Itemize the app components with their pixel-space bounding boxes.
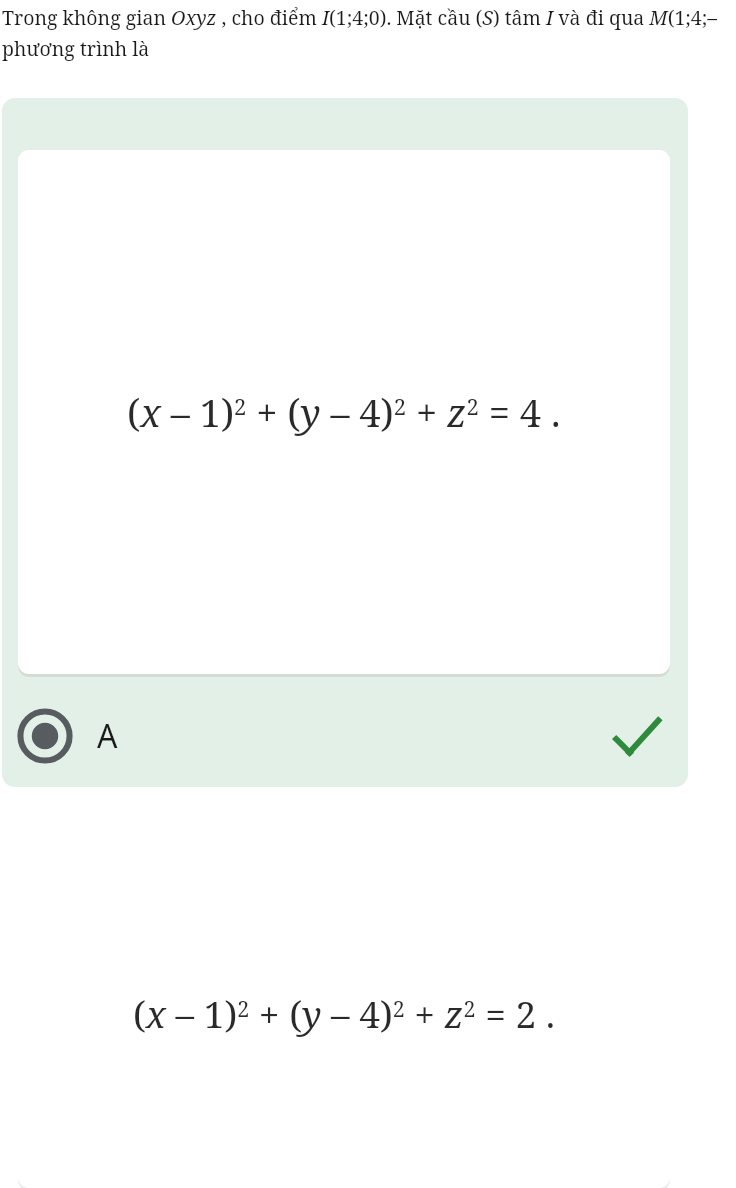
button[interactable]: Select answer A xyxy=(18,709,72,763)
button[interactable]: (x – 1)2 + (y – 4)2 + z2 = 4 . xyxy=(2,98,688,787)
staticText: (x – 1)2 + (y – 4)2 + z2 = 4 . xyxy=(127,386,561,438)
staticText: A xyxy=(97,714,118,758)
button[interactable]: (x – 1)2 + (y – 4)2 + z2 = 2 . xyxy=(18,837,670,1188)
staticText: Trong không gian Oxyz , cho điểm I(1;4;0… xyxy=(2,4,734,31)
staticText: phương trình là xyxy=(2,35,150,62)
staticText: (x – 1)2 + (y – 4)2 + z2 = 2 . xyxy=(133,988,555,1038)
other: Correct answer xyxy=(608,708,664,764)
